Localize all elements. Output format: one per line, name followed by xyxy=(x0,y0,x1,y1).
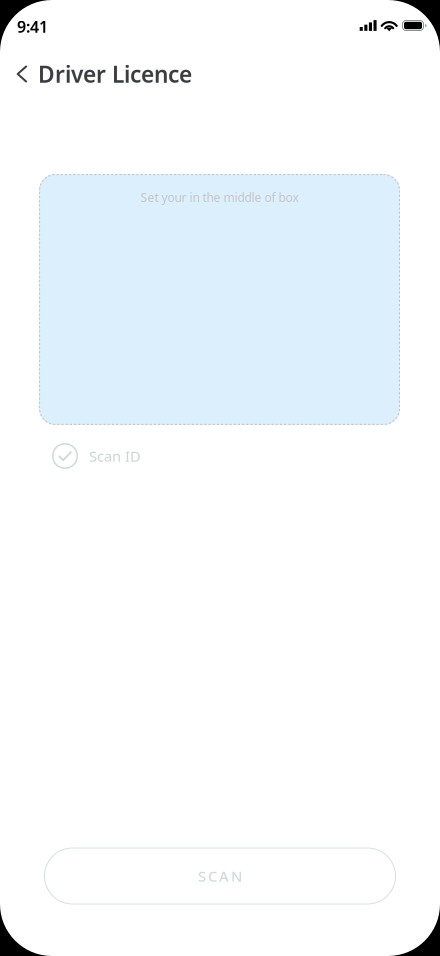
staticText: S C A N xyxy=(198,866,242,886)
button[interactable]: Scan ID xyxy=(52,443,141,469)
staticText: 9:41 xyxy=(17,16,48,37)
staticText: Scan ID xyxy=(89,446,141,466)
staticText: Driver Licence xyxy=(38,59,192,89)
staticText: Set your in the middle of box xyxy=(140,189,298,205)
button[interactable]: Back xyxy=(7,56,37,92)
button[interactable]: S C A N xyxy=(44,847,396,904)
